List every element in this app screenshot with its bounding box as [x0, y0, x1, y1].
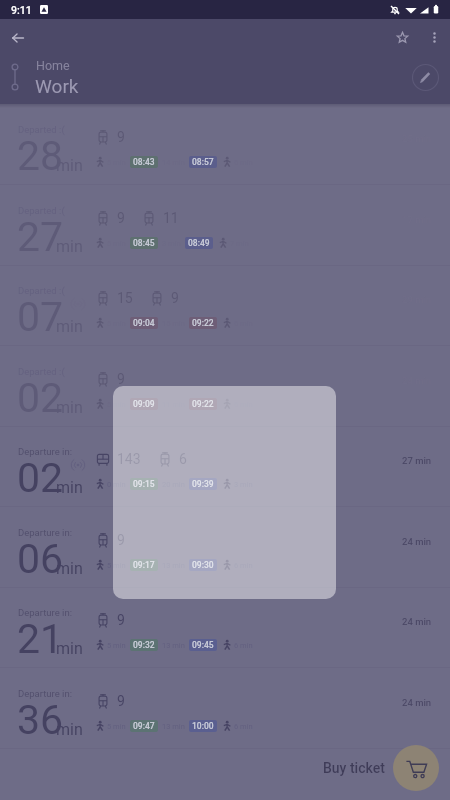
staticText: 6	[179, 451, 187, 467]
staticText: 10:00	[192, 721, 214, 731]
staticText: 08:57	[192, 157, 214, 167]
button[interactable]: More options	[421, 24, 448, 51]
staticText: 09:15	[133, 479, 155, 489]
staticText: 5 min	[107, 722, 126, 731]
staticText: 09:09	[133, 399, 155, 409]
staticText: 09:47	[133, 721, 155, 731]
staticText: 09:45	[192, 640, 214, 650]
staticText: Departed :(	[18, 124, 65, 135]
staticText: 6 min	[234, 722, 253, 731]
staticText: 09:39	[192, 479, 214, 489]
staticText: 08:45	[133, 238, 155, 248]
staticText: Departure in:	[18, 527, 72, 538]
staticText: 6 min	[234, 641, 253, 650]
staticText: 36	[17, 696, 64, 744]
staticText: 09:17	[133, 560, 155, 570]
button[interactable]: Departed :(	[0, 185, 450, 266]
staticText: min	[56, 720, 83, 739]
staticText: 9:11	[11, 4, 32, 16]
staticText: 06	[17, 535, 64, 583]
staticText: min	[56, 398, 83, 417]
staticText: Departure in:	[18, 688, 72, 699]
staticText: Departure in:	[18, 607, 72, 618]
button[interactable]: Favourite	[389, 24, 416, 51]
staticText: 09:32	[133, 640, 155, 650]
staticText: Departed :(	[18, 285, 65, 296]
button[interactable]: Departed :(	[0, 265, 450, 346]
staticText: 21	[17, 615, 64, 663]
staticText: min	[56, 156, 83, 175]
staticText: 0 min	[107, 480, 126, 489]
staticText: 5 min	[107, 561, 126, 570]
staticText: 09:30	[192, 560, 214, 570]
staticText: 5 min	[107, 400, 126, 409]
staticText: 27 min	[402, 455, 432, 466]
button[interactable]: Back	[4, 24, 31, 51]
staticText: Departure in:	[18, 446, 72, 457]
button[interactable]: Departure in:	[0, 507, 450, 588]
staticText: 08:43	[133, 157, 155, 167]
staticText: min	[56, 237, 83, 256]
staticText: min	[56, 317, 83, 336]
staticText: 27	[17, 213, 64, 261]
staticText: 13 min	[162, 641, 185, 650]
staticText: 02	[17, 454, 64, 502]
staticText: min	[56, 559, 83, 578]
staticText: Departed :(	[18, 205, 65, 216]
staticText: 9	[117, 612, 125, 628]
staticText: 24 min	[402, 616, 432, 627]
button[interactable]: Departed :(	[0, 104, 450, 185]
staticText: min	[56, 639, 83, 658]
staticText: Departed :(	[18, 366, 65, 377]
button[interactable]: Departure in:	[0, 668, 450, 749]
staticText: 9	[117, 129, 125, 145]
button[interactable]: Edit route	[409, 61, 441, 93]
button[interactable]: Buy ticket	[323, 745, 439, 791]
staticText: 24 min	[402, 536, 432, 547]
staticText: 143	[117, 451, 141, 467]
button[interactable]: Departure in:	[0, 426, 450, 507]
staticText: 9	[117, 371, 125, 387]
staticText: Work	[35, 75, 79, 97]
staticText: 9	[117, 693, 125, 709]
staticText: 13 min	[162, 722, 185, 731]
staticText: 9	[171, 290, 179, 306]
staticText: 08:49	[188, 238, 210, 248]
button[interactable]: Departure in:	[0, 587, 450, 668]
staticText: 5 min	[107, 641, 126, 650]
staticText: 09:22	[192, 318, 214, 328]
staticText: 09:22	[192, 399, 214, 409]
staticText: 02	[17, 374, 64, 422]
staticText: min	[56, 478, 83, 497]
staticText: 09:04	[133, 318, 155, 328]
staticText: 11	[163, 210, 179, 226]
staticText: 15	[117, 290, 133, 306]
staticText: 24 min	[402, 697, 432, 708]
staticText: Home	[36, 58, 70, 73]
staticText: 28	[17, 132, 64, 180]
staticText: 9	[117, 210, 125, 226]
staticText: Buy ticket	[323, 760, 385, 776]
staticText: 07	[17, 293, 64, 341]
staticText: 9	[117, 532, 125, 548]
button[interactable]: Departed :(	[0, 346, 450, 427]
